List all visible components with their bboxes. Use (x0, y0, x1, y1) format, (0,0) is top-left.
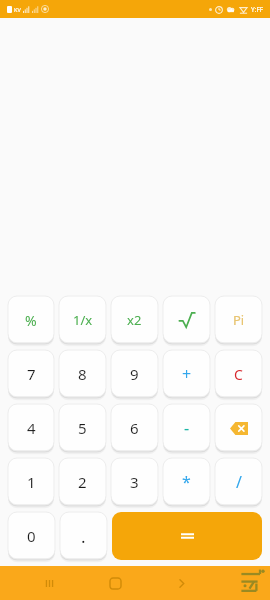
button[interactable] (112, 512, 262, 560)
button[interactable]: 8 (59, 350, 106, 398)
staticText: 8 (78, 364, 87, 384)
staticText: % (25, 311, 37, 330)
staticText: . (81, 525, 86, 548)
button[interactable]: 6 (111, 404, 158, 452)
button[interactable]: 1 (8, 458, 54, 506)
button[interactable]: Recents (32, 566, 66, 600)
staticText: 7 (27, 364, 36, 384)
button[interactable]: 9 (111, 350, 158, 398)
staticText: 9 (130, 364, 139, 384)
staticText: 2 (78, 472, 87, 492)
staticText: / (236, 471, 242, 493)
button[interactable]: x2 (111, 296, 158, 344)
staticText: 0 (27, 526, 36, 546)
button[interactable]: Back (164, 566, 198, 600)
staticText: 3 (130, 472, 139, 492)
staticText: 5 (78, 418, 87, 438)
staticText: 4 (27, 418, 36, 438)
staticText: KV (14, 6, 21, 13)
button[interactable]: 1/x (59, 296, 106, 344)
button[interactable]: Backspace (215, 404, 262, 452)
button[interactable]: 3 (111, 458, 158, 506)
button[interactable]: * (163, 458, 210, 506)
button[interactable]: - (163, 404, 210, 452)
staticText: * (182, 471, 191, 493)
button[interactable]: 7 (8, 350, 54, 398)
staticText: 1 (27, 472, 36, 492)
button[interactable]: . (60, 512, 107, 560)
button[interactable]: + (163, 350, 210, 398)
button[interactable]: 0 (8, 512, 55, 560)
staticText: + (182, 363, 192, 385)
button[interactable]: Square root (163, 296, 210, 344)
button[interactable]: 4 (8, 404, 54, 452)
staticText: Y:FF (251, 5, 264, 14)
button[interactable]: 2 (59, 458, 106, 506)
staticText: 1/x (73, 311, 93, 329)
staticText: x2 (127, 311, 142, 329)
staticText: - (184, 417, 190, 439)
button[interactable]: Pi (215, 296, 262, 344)
staticText: C (234, 365, 243, 384)
button[interactable]: Home (98, 566, 132, 600)
button[interactable]: 5 (59, 404, 106, 452)
staticText: Pi (233, 311, 245, 329)
button[interactable]: % (8, 296, 54, 344)
staticText: 6 (130, 418, 139, 438)
button[interactable]: C (215, 350, 262, 398)
button[interactable]: / (215, 458, 262, 506)
